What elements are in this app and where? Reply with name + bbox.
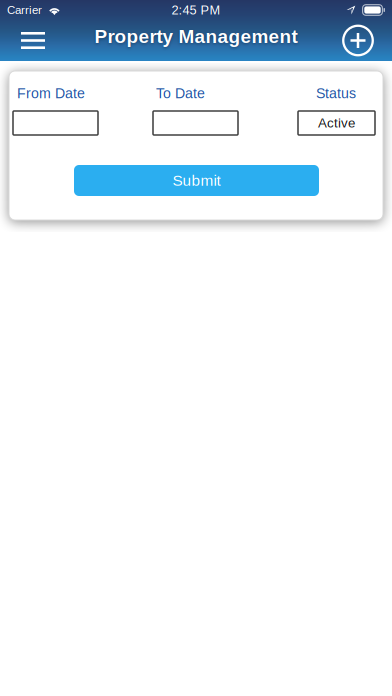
staticText: 2:45 PM: [171, 3, 220, 17]
button[interactable]: From Date: [13, 111, 98, 135]
staticText: From Date: [17, 85, 85, 101]
staticText: To Date: [156, 85, 205, 101]
staticText: Submit: [172, 172, 220, 189]
button[interactable]: Active: [298, 111, 375, 135]
button[interactable]: Menu: [11, 20, 55, 61]
staticText: Property Management: [94, 26, 297, 47]
staticText: Carrier: [7, 4, 42, 16]
staticText: Status: [316, 85, 356, 101]
button[interactable]: Add: [336, 20, 380, 61]
button[interactable]: To Date: [153, 111, 238, 135]
button[interactable]: Submit: [74, 165, 319, 196]
staticText: Active: [318, 116, 355, 130]
